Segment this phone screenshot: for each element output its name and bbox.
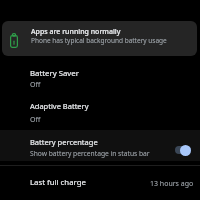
staticText: Battery percentage bbox=[30, 137, 98, 147]
staticText: Phone has typical background battery usa… bbox=[31, 36, 167, 45]
button[interactable]: Adaptive Battery bbox=[0, 96, 200, 130]
staticText: Off bbox=[30, 115, 41, 125]
button[interactable]: Battery percentage bbox=[0, 130, 200, 161]
button[interactable]: Battery Saver bbox=[0, 64, 200, 96]
staticText: Adaptive Battery bbox=[30, 101, 89, 111]
button[interactable]: Last full charge bbox=[0, 168, 200, 200]
staticText: Off bbox=[30, 80, 41, 90]
staticText: Show battery percentage in status bar bbox=[30, 149, 150, 158]
staticText: Last full charge bbox=[30, 177, 86, 188]
staticText: 13 hours ago bbox=[150, 179, 194, 189]
staticText: Battery Saver bbox=[30, 68, 79, 79]
staticText: Apps are running normally bbox=[31, 27, 121, 37]
button[interactable]: Apps are running normally bbox=[2, 21, 197, 56]
